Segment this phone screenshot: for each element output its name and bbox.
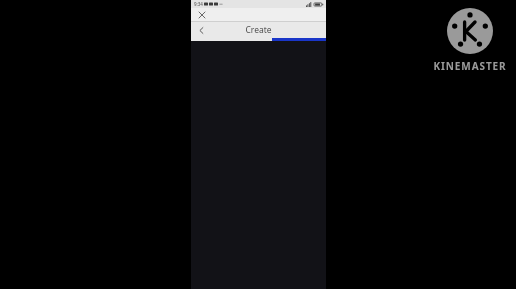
staticText: KINEMASTER [433, 59, 507, 73]
staticText: Create [245, 24, 272, 36]
button[interactable]: Back [195, 24, 207, 36]
button[interactable]: Close [196, 9, 207, 20]
staticText: 9:34 [194, 1, 203, 7]
